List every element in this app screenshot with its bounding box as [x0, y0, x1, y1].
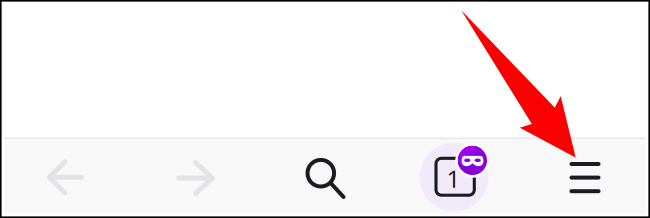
button[interactable]: Back	[0, 0, 650, 218]
button[interactable]: Search	[0, 0, 650, 218]
staticText: 1	[446, 163, 460, 194]
button[interactable]: Menu	[0, 0, 650, 218]
button[interactable]: Tabs, 1 open, private browsing	[0, 0, 650, 218]
button[interactable]: Forward	[0, 0, 650, 218]
